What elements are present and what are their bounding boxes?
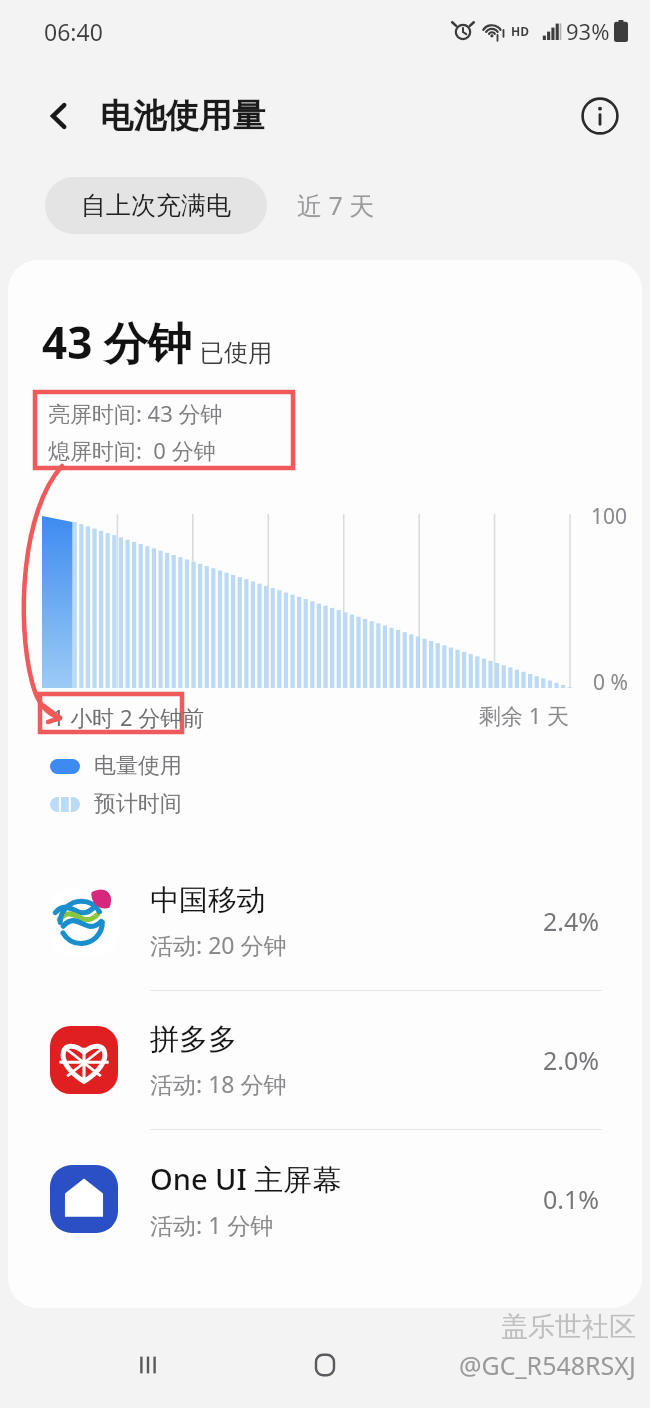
button[interactable]: Back <box>30 90 82 142</box>
staticText: 中国移动 <box>150 882 266 919</box>
staticText: 已使用 <box>200 338 272 368</box>
button[interactable]: Recents <box>118 1335 178 1395</box>
staticText: 活动: 18 分钟 <box>150 1068 287 1099</box>
button[interactable]: 近 7 天 <box>267 175 405 235</box>
staticText: 43 分钟 <box>42 312 192 372</box>
staticText: 06:40 <box>44 16 103 47</box>
staticText: 自上次充满电 <box>81 190 231 221</box>
staticText: 熄屏时间: 0 分钟 <box>48 435 216 465</box>
staticText: 剩余 1 天 <box>479 700 570 730</box>
staticText: 活动: 20 分钟 <box>150 929 287 960</box>
button[interactable]: Back <box>473 1335 533 1395</box>
staticText: 2.4% <box>543 904 600 938</box>
staticText: 亮屏时间: 43 分钟 <box>48 398 223 428</box>
button[interactable]: One UI 主屏幕 <box>8 1130 642 1268</box>
staticText: 1 小时 2 分钟前 <box>52 702 205 732</box>
staticText: 预计时间 <box>94 790 182 818</box>
staticText: 电量使用 <box>94 752 182 780</box>
staticText: 0 % <box>593 668 628 697</box>
staticText: 电池使用量 <box>100 95 265 137</box>
button[interactable]: Information <box>574 90 626 142</box>
button[interactable]: Home <box>295 1335 355 1395</box>
button[interactable]: 中国移动 <box>8 852 642 990</box>
staticText: 活动: 1 分钟 <box>150 1209 274 1240</box>
staticText: 100 <box>591 502 628 531</box>
staticText: 拼多多 <box>150 1021 237 1058</box>
button[interactable]: 自上次充满电 <box>45 177 267 234</box>
staticText: @GC_R548RSXJ <box>459 1348 636 1382</box>
staticText: 盖乐世社区 <box>501 1310 636 1344</box>
button[interactable]: 拼多多 <box>8 991 642 1129</box>
staticText: 2.0% <box>543 1043 600 1077</box>
staticText: One UI 主屏幕 <box>150 1159 342 1199</box>
staticText: HD <box>511 23 529 39</box>
staticText: 0.1% <box>543 1182 600 1216</box>
staticText: 近 7 天 <box>297 188 375 222</box>
staticText: 93% <box>566 16 610 46</box>
